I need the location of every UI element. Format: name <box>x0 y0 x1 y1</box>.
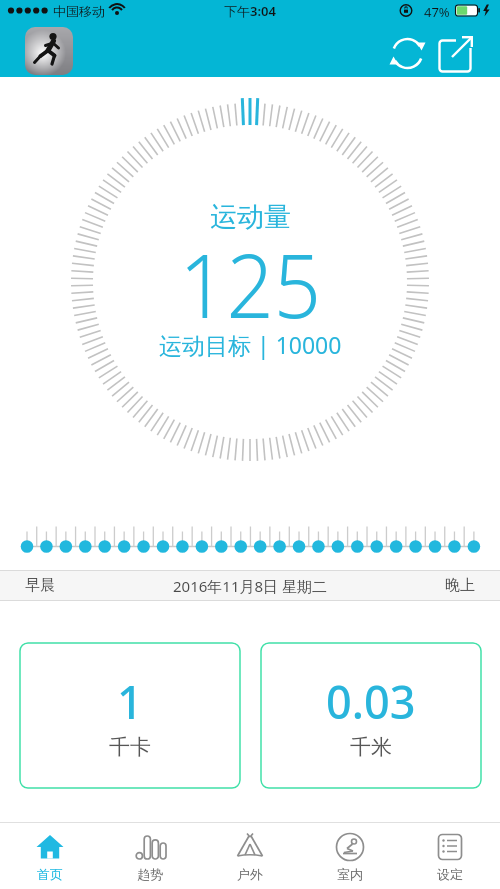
button[interactable]: 设定 <box>400 822 500 889</box>
staticText: 下午3:04 <box>224 2 276 20</box>
button[interactable]: 0.03 <box>260 642 482 789</box>
staticText: jingyan.baidu.com <box>330 862 426 877</box>
staticText: 户外 <box>237 866 263 882</box>
button[interactable]: 室内 <box>300 822 400 889</box>
staticText: 趋势 <box>137 866 163 882</box>
staticText: 室内 <box>337 866 363 882</box>
staticText: 千卡 <box>109 734 151 760</box>
staticText: 设定 <box>437 866 463 882</box>
staticText: 千米 <box>350 734 392 760</box>
staticText: 百度经验 <box>390 846 450 865</box>
staticText: 0.03 <box>326 671 416 732</box>
staticText: 首页 <box>37 866 63 882</box>
button[interactable]: 趋势 <box>100 822 200 889</box>
button[interactable]: 1 <box>19 642 241 789</box>
staticText: 运动量 <box>210 200 291 234</box>
staticText: 1 <box>117 671 143 732</box>
button[interactable] <box>389 35 426 72</box>
staticText: 2016年11月8日 星期二 <box>173 576 327 596</box>
staticText: 125 <box>179 223 322 344</box>
staticText: 晚上 <box>445 576 475 595</box>
button[interactable]: 首页 <box>0 822 100 889</box>
staticText: 运动目标 | 10000 <box>159 329 342 360</box>
staticText: 早晨 <box>25 576 55 595</box>
button[interactable] <box>25 27 73 75</box>
staticText: 中国移动 <box>53 3 105 19</box>
staticText: 47% <box>424 3 450 21</box>
button[interactable]: 户外 <box>200 822 300 889</box>
button[interactable] <box>438 36 475 73</box>
